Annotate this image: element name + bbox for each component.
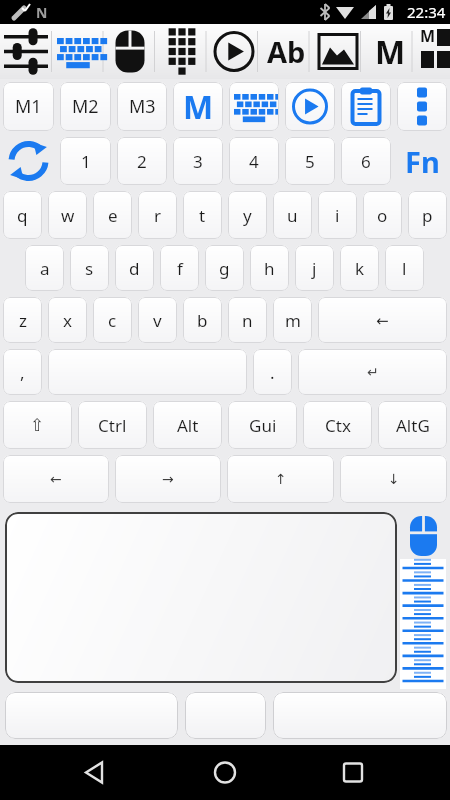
- button[interactable]: [48, 349, 247, 395]
- staticText: N: [36, 3, 48, 22]
- button[interactable]: y: [228, 191, 267, 239]
- button[interactable]: [0, 24, 52, 79]
- button[interactable]: Fn: [394, 134, 450, 188]
- button[interactable]: i: [318, 191, 357, 239]
- button[interactable]: 5: [285, 137, 335, 185]
- button[interactable]: o: [363, 191, 402, 239]
- button[interactable]: r: [138, 191, 177, 239]
- button[interactable]: ↓: [340, 455, 447, 503]
- button[interactable]: [312, 24, 364, 79]
- button[interactable]: [397, 82, 447, 131]
- button[interactable]: 1: [60, 137, 111, 185]
- button[interactable]: p: [408, 191, 447, 239]
- button[interactable]: [229, 82, 279, 131]
- staticText: f: [177, 257, 183, 280]
- button[interactable]: ⇧: [3, 401, 72, 449]
- button[interactable]: [150, 745, 300, 800]
- button[interactable]: [300, 745, 450, 800]
- button[interactable]: [397, 514, 450, 558]
- button[interactable]: [185, 692, 266, 739]
- button[interactable]: e: [93, 191, 132, 239]
- button[interactable]: f: [160, 245, 199, 291]
- button[interactable]: M: [416, 24, 450, 79]
- button[interactable]: [156, 24, 208, 79]
- staticText: g: [219, 257, 230, 280]
- staticText: →: [162, 471, 174, 487]
- button[interactable]: [273, 692, 447, 739]
- button[interactable]: z: [3, 297, 42, 343]
- button[interactable]: t: [183, 191, 222, 239]
- staticText: Ab: [267, 32, 306, 71]
- staticText: ↵: [367, 364, 379, 380]
- button[interactable]: [5, 692, 178, 739]
- button[interactable]: ←: [318, 297, 447, 343]
- button[interactable]: M1: [3, 82, 54, 131]
- button[interactable]: 3: [173, 137, 223, 185]
- button[interactable]: ,: [3, 349, 42, 395]
- button[interactable]: j: [295, 245, 334, 291]
- button[interactable]: [397, 558, 450, 690]
- staticText: Gui: [249, 414, 277, 437]
- staticText: h: [264, 257, 275, 280]
- button[interactable]: ←: [3, 455, 109, 503]
- button[interactable]: [285, 82, 335, 131]
- button[interactable]: Ctrl: [78, 401, 147, 449]
- staticText: m: [285, 309, 301, 332]
- button[interactable]: Ab: [260, 24, 312, 79]
- button[interactable]: k: [340, 245, 379, 291]
- button[interactable]: x: [48, 297, 87, 343]
- button[interactable]: m: [273, 297, 312, 343]
- staticText: u: [287, 204, 298, 227]
- button[interactable]: →: [115, 455, 221, 503]
- button[interactable]: [0, 134, 57, 188]
- button[interactable]: AltG: [378, 401, 447, 449]
- staticText: 6: [361, 150, 371, 173]
- button[interactable]: 4: [229, 137, 279, 185]
- button[interactable]: c: [93, 297, 132, 343]
- staticText: ↑: [275, 471, 287, 487]
- button[interactable]: g: [205, 245, 244, 291]
- button[interactable]: [341, 82, 391, 131]
- button[interactable]: 6: [341, 137, 391, 185]
- button[interactable]: Alt: [153, 401, 222, 449]
- button[interactable]: [0, 745, 150, 800]
- button[interactable]: M3: [117, 82, 167, 131]
- button[interactable]: n: [228, 297, 267, 343]
- button[interactable]: [5, 512, 397, 683]
- staticText: b: [197, 309, 208, 332]
- button[interactable]: M2: [60, 82, 111, 131]
- staticText: M3: [129, 94, 156, 119]
- button[interactable]: v: [138, 297, 177, 343]
- button[interactable]: ↑: [227, 455, 334, 503]
- button[interactable]: M: [364, 24, 416, 79]
- button[interactable]: M: [173, 82, 223, 131]
- staticText: M: [183, 85, 214, 129]
- staticText: l: [402, 257, 407, 280]
- button[interactable]: [208, 24, 260, 79]
- staticText: o: [377, 204, 388, 227]
- button[interactable]: [104, 24, 156, 79]
- button[interactable]: h: [250, 245, 289, 291]
- staticText: s: [85, 257, 94, 280]
- button[interactable]: a: [25, 245, 64, 291]
- staticText: .: [270, 361, 275, 384]
- button[interactable]: 2: [117, 137, 167, 185]
- button[interactable]: w: [48, 191, 87, 239]
- button[interactable]: q: [3, 191, 42, 239]
- staticText: q: [17, 204, 28, 227]
- button[interactable]: Ctx: [303, 401, 372, 449]
- button[interactable]: l: [385, 245, 424, 291]
- button[interactable]: b: [183, 297, 222, 343]
- button[interactable]: s: [70, 245, 109, 291]
- staticText: M1: [15, 94, 42, 119]
- button[interactable]: d: [115, 245, 154, 291]
- button[interactable]: [52, 24, 104, 79]
- button[interactable]: ↵: [298, 349, 447, 395]
- staticText: y: [243, 204, 252, 227]
- button[interactable]: Gui: [228, 401, 297, 449]
- button[interactable]: u: [273, 191, 312, 239]
- staticText: d: [129, 257, 140, 280]
- staticText: 4: [249, 150, 259, 173]
- staticText: z: [19, 309, 27, 332]
- button[interactable]: .: [253, 349, 292, 395]
